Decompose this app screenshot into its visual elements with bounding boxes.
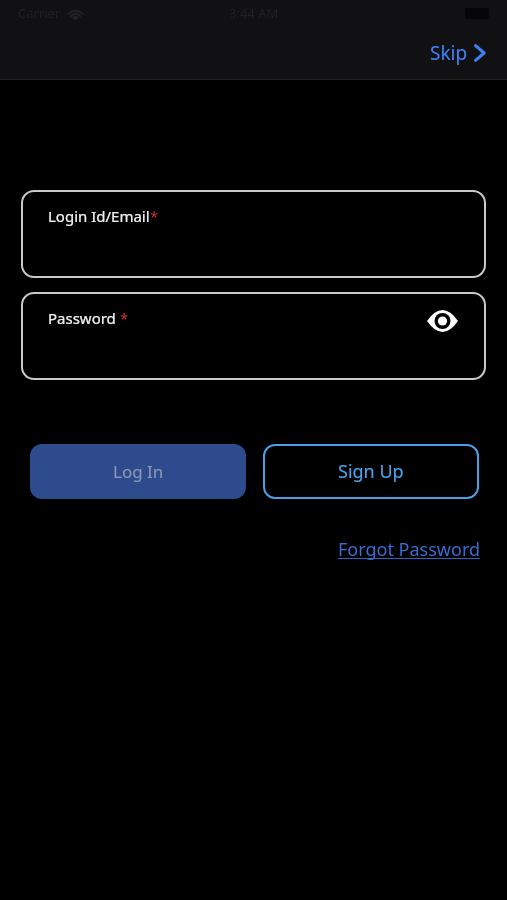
staticText: *	[150, 206, 159, 226]
staticText: Password	[48, 308, 120, 328]
button[interactable]: Forgot Password	[338, 537, 481, 562]
staticText: Sign Up	[338, 459, 404, 484]
button[interactable]: Skip	[430, 40, 485, 66]
staticText: Carrier	[18, 4, 61, 22]
staticText: *	[120, 308, 129, 328]
button[interactable]: Sign Up	[263, 444, 479, 499]
button[interactable]: Login Id/Email	[21, 190, 486, 278]
button[interactable]: Password	[21, 292, 486, 380]
staticText: 3:44 AM	[229, 4, 279, 22]
button[interactable]: Log In	[30, 444, 246, 499]
button[interactable]	[427, 311, 458, 331]
staticText: Log In	[113, 460, 164, 483]
staticText: Login Id/Email	[48, 206, 150, 226]
staticText: Skip	[430, 40, 468, 66]
